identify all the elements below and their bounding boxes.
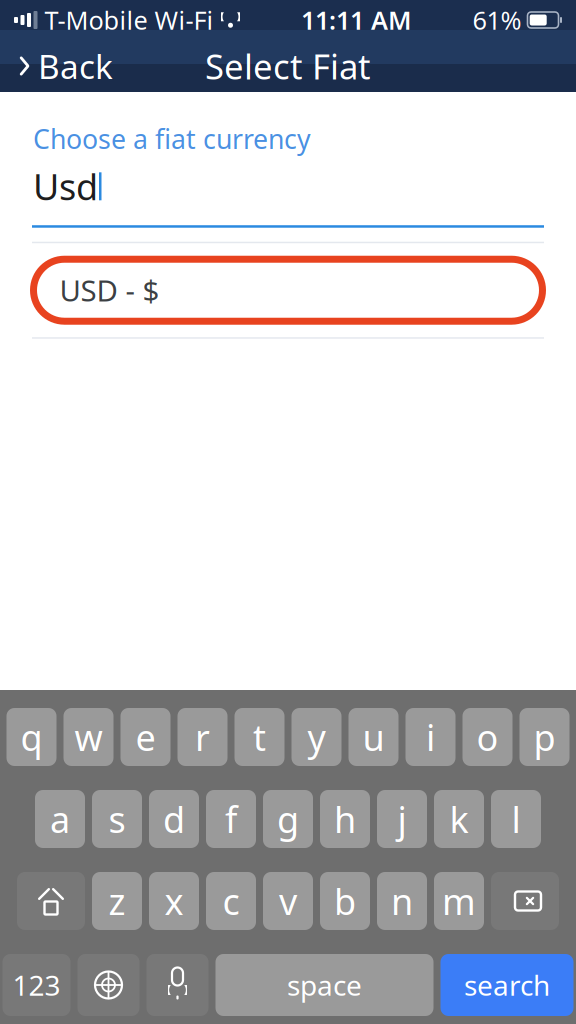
button[interactable]: c: [206, 872, 256, 930]
staticText: a: [50, 795, 70, 843]
staticText: p: [533, 713, 555, 761]
button[interactable]: space: [215, 954, 433, 1016]
button[interactable]: s: [92, 790, 142, 848]
staticText: Choose a fiat currency: [33, 121, 311, 156]
button[interactable]: o: [462, 708, 512, 766]
staticText: Select Fiat: [205, 43, 371, 89]
button[interactable]: m: [434, 872, 484, 930]
staticText: g: [277, 795, 299, 843]
button[interactable]: i: [405, 708, 455, 766]
staticText: s: [108, 795, 125, 843]
button[interactable]: USD - $: [33, 259, 542, 321]
button[interactable]: Next keyboard: [77, 954, 139, 1016]
button[interactable]: y: [291, 708, 341, 766]
button[interactable]: j: [377, 790, 427, 848]
button[interactable]: f: [206, 790, 256, 848]
button[interactable]: Back: [0, 40, 127, 92]
button[interactable]: e: [120, 708, 170, 766]
staticText: 123: [12, 966, 60, 1004]
button[interactable]: w: [63, 708, 113, 766]
staticText: v: [279, 877, 297, 925]
staticText: n: [391, 877, 413, 925]
staticText: w: [74, 713, 102, 761]
staticText: space: [287, 966, 362, 1004]
staticText: d: [163, 795, 185, 843]
button[interactable]: l: [491, 790, 541, 848]
staticText: b: [334, 877, 356, 925]
button[interactable]: Shift: [17, 872, 85, 930]
staticText: t: [253, 713, 266, 761]
staticText: q: [20, 713, 42, 761]
staticText: u: [362, 713, 384, 761]
button[interactable]: t: [234, 708, 284, 766]
staticText: z: [108, 877, 125, 925]
button[interactable]: v: [263, 872, 313, 930]
staticText: h: [334, 795, 356, 843]
button[interactable]: u: [348, 708, 398, 766]
staticText: Usd: [33, 162, 98, 210]
staticText: j: [397, 795, 406, 843]
staticText: y: [307, 713, 325, 761]
button[interactable]: Delete: [491, 872, 559, 930]
button[interactable]: x: [149, 872, 199, 930]
staticText: 61%: [472, 3, 521, 37]
staticText: x: [164, 877, 183, 925]
staticText: f: [225, 795, 237, 843]
button[interactable]: search: [440, 954, 573, 1016]
staticText: T-Mobile Wi-Fi: [44, 3, 213, 37]
button[interactable]: p: [519, 708, 569, 766]
button[interactable]: r: [177, 708, 227, 766]
button[interactable]: d: [149, 790, 199, 848]
staticText: i: [426, 713, 435, 761]
staticText: r: [195, 713, 210, 761]
button[interactable]: Dictate: [146, 954, 208, 1016]
button[interactable]: n: [377, 872, 427, 930]
staticText: m: [442, 877, 476, 925]
button[interactable]: b: [320, 872, 370, 930]
staticText: k: [449, 795, 468, 843]
staticText: e: [135, 713, 155, 761]
button[interactable]: z: [92, 872, 142, 930]
staticText: search: [464, 966, 550, 1004]
staticText: Back: [38, 44, 113, 88]
button[interactable]: h: [320, 790, 370, 848]
staticText: USD - $: [59, 271, 159, 310]
button[interactable]: 123: [2, 954, 70, 1016]
staticText: c: [222, 877, 239, 925]
button[interactable]: k: [434, 790, 484, 848]
staticText: l: [511, 795, 520, 843]
button[interactable]: a: [35, 790, 85, 848]
button[interactable]: g: [263, 790, 313, 848]
staticText: o: [476, 713, 498, 761]
staticText: 11:11 AM: [301, 3, 412, 37]
button[interactable]: q: [6, 708, 56, 766]
